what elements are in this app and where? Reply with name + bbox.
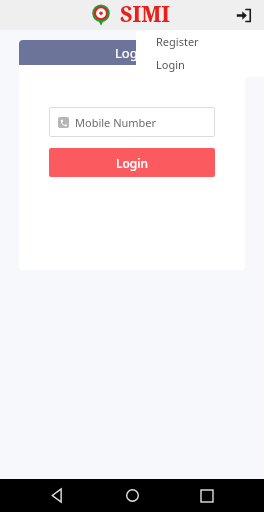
button[interactable]: Mobile Number — [49, 107, 215, 137]
staticText: Login — [116, 155, 148, 171]
staticText: Register — [156, 34, 199, 49]
button[interactable]: Home — [114, 479, 150, 512]
button[interactable]: Login — [49, 148, 215, 177]
staticText: SIMI — [120, 0, 170, 29]
staticText: Mobile Number — [75, 115, 157, 130]
button[interactable]: Recent apps — [189, 479, 225, 512]
button[interactable]: Login menu — [230, 2, 256, 28]
staticText: Login — [156, 57, 185, 72]
button[interactable]: Back — [39, 479, 75, 512]
staticText: Login — [115, 44, 150, 62]
button[interactable]: Login — [136, 53, 264, 76]
button[interactable]: Register — [136, 30, 264, 53]
